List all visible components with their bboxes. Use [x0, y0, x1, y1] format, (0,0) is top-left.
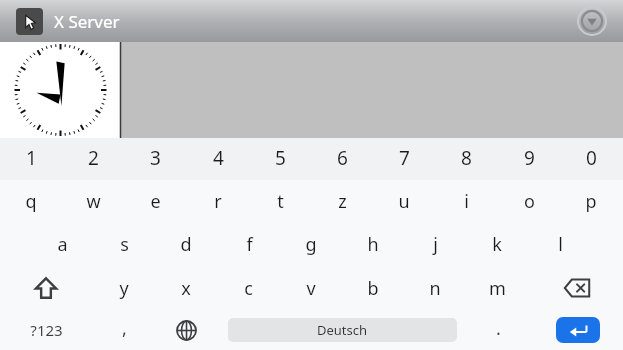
button[interactable]: Backspace	[553, 268, 601, 308]
staticText: o	[524, 189, 535, 214]
button[interactable]: r	[197, 182, 239, 220]
button[interactable]: Enter	[556, 317, 600, 343]
button[interactable]: f	[228, 225, 270, 263]
staticText: h	[367, 232, 379, 257]
button[interactable]: l	[539, 225, 581, 263]
staticText: 8	[461, 145, 472, 171]
staticText: s	[120, 232, 129, 257]
button[interactable]: w	[72, 182, 114, 220]
staticText: d	[180, 232, 192, 257]
button[interactable]: i	[445, 182, 487, 220]
staticText: 3	[150, 145, 161, 171]
button[interactable]: a	[41, 225, 83, 263]
staticText: b	[367, 276, 379, 301]
staticText: 6	[337, 145, 348, 171]
button[interactable]: 3	[134, 139, 176, 177]
staticText: Deutsch	[317, 321, 368, 339]
staticText: u	[398, 189, 410, 214]
staticText: t	[277, 189, 284, 214]
button[interactable]: ?123	[25, 311, 67, 349]
button[interactable]: 2	[72, 139, 114, 177]
button[interactable]: v	[290, 269, 332, 307]
button[interactable]: Collapse	[578, 7, 606, 35]
staticText: j	[433, 232, 438, 257]
button[interactable]: z	[321, 182, 363, 220]
button[interactable]: t	[259, 182, 301, 220]
staticText: l	[558, 232, 563, 257]
button[interactable]: k	[476, 225, 518, 263]
button[interactable]: 0	[570, 139, 612, 177]
button[interactable]: e	[134, 182, 176, 220]
staticText: 4	[213, 145, 224, 171]
button[interactable]: d	[165, 225, 207, 263]
staticText: x	[181, 276, 191, 301]
staticText: k	[492, 232, 502, 257]
button[interactable]: p	[570, 182, 612, 220]
button[interactable]: h	[352, 225, 394, 263]
button[interactable]: j	[414, 225, 456, 263]
button[interactable]: 6	[321, 139, 363, 177]
button[interactable]: 7	[383, 139, 425, 177]
button[interactable]: g	[290, 225, 332, 263]
button[interactable]: .	[477, 309, 519, 347]
staticText: q	[25, 189, 37, 214]
button[interactable]: X Server cursor	[16, 8, 43, 35]
button[interactable]: n	[414, 269, 456, 307]
staticText: ,	[122, 316, 127, 341]
staticText: 5	[275, 145, 286, 171]
button[interactable]: c	[227, 269, 269, 307]
staticText: ?123	[30, 320, 63, 340]
button[interactable]: q	[10, 182, 52, 220]
button[interactable]: o	[508, 182, 550, 220]
staticText: .	[496, 316, 501, 341]
staticText: w	[86, 189, 101, 214]
button[interactable]: 1	[10, 139, 52, 177]
staticText: 2	[88, 145, 99, 171]
button[interactable]: 4	[197, 139, 239, 177]
staticText: v	[306, 276, 316, 301]
staticText: 0	[586, 145, 597, 171]
staticText: r	[214, 189, 222, 214]
staticText: f	[246, 232, 253, 257]
staticText: y	[119, 276, 129, 301]
button[interactable]: b	[352, 269, 394, 307]
button[interactable]: ,	[103, 309, 145, 347]
button[interactable]: y	[103, 269, 145, 307]
staticText: c	[244, 276, 253, 301]
button[interactable]: s	[103, 225, 145, 263]
button[interactable]: Change keyboard language	[164, 312, 208, 348]
staticText: g	[305, 232, 317, 257]
button[interactable]: x	[165, 269, 207, 307]
staticText: n	[429, 276, 441, 301]
button[interactable]: 8	[445, 139, 487, 177]
staticText: a	[57, 232, 68, 257]
button[interactable]: m	[476, 269, 518, 307]
staticText: e	[150, 189, 161, 214]
button[interactable]: u	[383, 182, 425, 220]
staticText: p	[585, 189, 597, 214]
staticText: X Server	[54, 10, 120, 33]
staticText: z	[338, 189, 347, 214]
button[interactable]: 5	[259, 139, 301, 177]
button[interactable]: 9	[508, 139, 550, 177]
staticText: m	[489, 276, 506, 301]
staticText: i	[464, 189, 469, 214]
staticText: 1	[26, 145, 37, 171]
staticText: 7	[399, 145, 410, 171]
button[interactable]: Deutsch	[228, 318, 457, 342]
button[interactable]: Shift	[22, 268, 70, 308]
staticText: 9	[524, 145, 535, 171]
